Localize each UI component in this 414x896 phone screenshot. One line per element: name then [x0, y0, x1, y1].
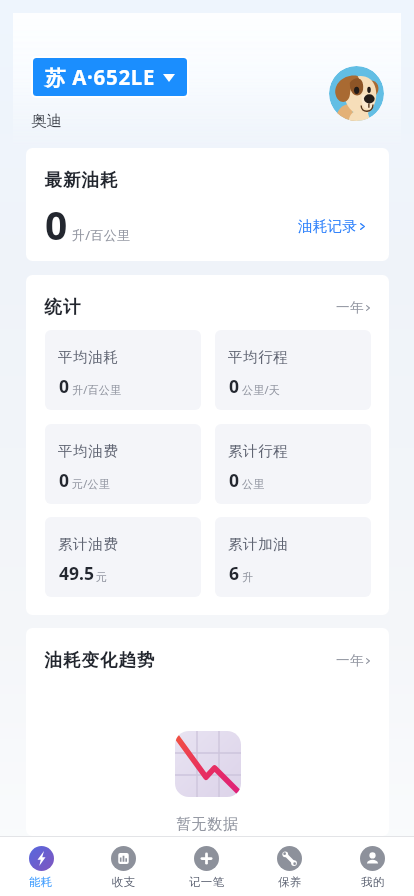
- other: Add record: [194, 846, 219, 871]
- button[interactable]: Profile: [331, 837, 414, 896]
- button[interactable]: 油耗记录: [295, 214, 368, 238]
- staticText: 0: [229, 374, 240, 398]
- staticText: 苏 A·652LE: [45, 63, 156, 91]
- staticText: 升: [242, 570, 254, 584]
- button[interactable]: Energy: [0, 837, 82, 896]
- staticText: 记一笔: [189, 875, 225, 889]
- button[interactable]: 累计行程: [215, 424, 371, 504]
- other: Income and expense: [111, 846, 136, 871]
- button[interactable]: 一年: [333, 296, 373, 319]
- staticText: 平均油费: [58, 442, 119, 460]
- staticText: 收支: [112, 875, 136, 889]
- staticText: 元/公里: [72, 476, 110, 491]
- staticText: 累计行程: [228, 442, 289, 460]
- staticText: 0: [59, 468, 70, 492]
- staticText: 元: [96, 570, 108, 584]
- other: Maintenance: [277, 846, 302, 871]
- staticText: 一年: [336, 299, 364, 316]
- staticText: 升/百公里: [72, 226, 131, 244]
- staticText: 平均油耗: [58, 348, 119, 366]
- staticText: 累计加油: [228, 535, 289, 553]
- staticText: 我的: [361, 875, 385, 889]
- staticText: 升/百公里: [72, 382, 122, 397]
- button[interactable]: 平均行程: [215, 330, 371, 410]
- staticText: 能耗: [29, 875, 53, 889]
- staticText: 奥迪: [31, 111, 62, 131]
- button[interactable]: 平均油耗: [45, 330, 201, 410]
- staticText: 6: [229, 561, 240, 585]
- staticText: 累计油费: [58, 535, 119, 553]
- button[interactable]: Income and expense: [82, 837, 165, 896]
- button[interactable]: 平均油费: [45, 424, 201, 504]
- staticText: 油耗记录: [298, 217, 358, 235]
- button[interactable]: Add record: [165, 837, 248, 896]
- button[interactable]: 一年: [333, 649, 373, 672]
- button[interactable]: Maintenance: [248, 837, 331, 896]
- staticText: 公里/天: [242, 382, 280, 397]
- other: Profile: [360, 846, 385, 871]
- button[interactable]: 累计油费: [45, 517, 201, 597]
- staticText: 0: [59, 374, 70, 398]
- staticText: 保养: [278, 875, 302, 889]
- staticText: 一年: [336, 652, 364, 669]
- staticText: 49.5: [59, 561, 94, 585]
- button[interactable]: 累计加油: [215, 517, 371, 597]
- staticText: 暂无数据: [176, 815, 239, 834]
- staticText: 公里: [242, 477, 265, 491]
- button[interactable]: Profile avatar: [329, 66, 384, 121]
- staticText: 最新油耗: [44, 169, 118, 191]
- other: Energy: [29, 846, 54, 871]
- staticText: 平均行程: [228, 348, 289, 366]
- staticText: 统计: [44, 296, 81, 318]
- staticText: 0: [229, 468, 240, 492]
- button[interactable]: 苏 A·652LE: [33, 58, 187, 96]
- staticText: 0: [45, 198, 68, 251]
- staticText: 油耗变化趋势: [44, 649, 155, 671]
